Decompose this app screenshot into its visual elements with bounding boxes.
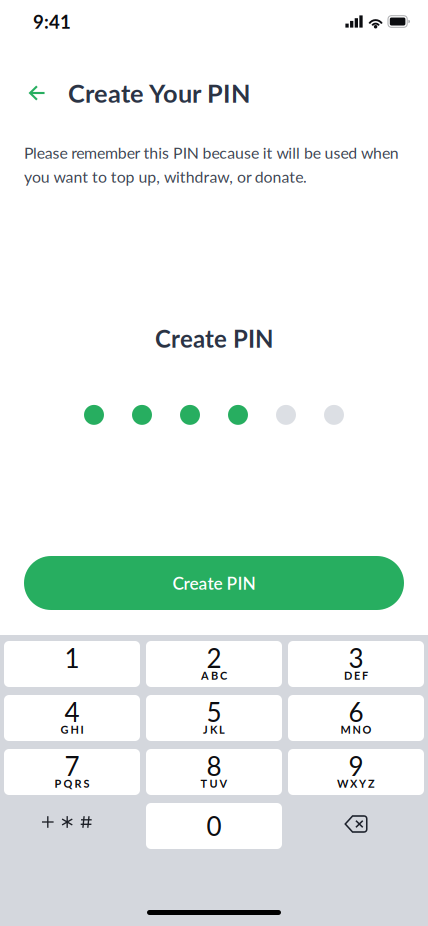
- button[interactable]: 1: [4, 641, 140, 687]
- button[interactable]: Back: [15, 71, 59, 115]
- button[interactable]: 2: [146, 641, 282, 687]
- staticText: PQRS: [54, 777, 89, 790]
- staticText: 9:41: [33, 10, 71, 33]
- staticText: JKL: [203, 723, 225, 736]
- staticText: 3: [348, 642, 363, 674]
- staticText: 9: [348, 750, 363, 782]
- button[interactable]: 4: [4, 695, 140, 741]
- staticText: 5: [206, 696, 221, 728]
- button[interactable]: 8: [146, 749, 282, 795]
- staticText: TUV: [200, 777, 227, 790]
- button[interactable]: 7: [4, 749, 140, 795]
- button[interactable]: Symbols: [4, 803, 140, 849]
- staticText: Please remember this PIN because it will…: [24, 143, 399, 186]
- staticText: ABC: [201, 669, 227, 682]
- button[interactable]: 0: [146, 803, 282, 849]
- staticText: 7: [64, 750, 79, 782]
- button[interactable]: 5: [146, 695, 282, 741]
- button[interactable]: Create PIN: [24, 556, 404, 610]
- staticText: 6: [348, 696, 363, 728]
- staticText: Create PIN: [172, 573, 255, 593]
- staticText: 8: [206, 750, 221, 782]
- staticText: WXYZ: [337, 777, 375, 790]
- staticText: 1: [64, 642, 79, 674]
- staticText: Create PIN: [155, 324, 273, 353]
- staticText: GHI: [60, 723, 83, 736]
- button[interactable]: 3: [288, 641, 424, 687]
- button[interactable]: 9: [288, 749, 424, 795]
- staticText: Create Your PIN: [68, 78, 251, 108]
- staticText: MNO: [340, 723, 371, 736]
- staticText: 4: [64, 696, 79, 728]
- staticText: DEF: [344, 669, 368, 682]
- button[interactable]: 6: [288, 695, 424, 741]
- staticText: 0: [206, 810, 221, 842]
- staticText: 2: [206, 642, 221, 674]
- button[interactable]: Delete: [288, 803, 424, 849]
